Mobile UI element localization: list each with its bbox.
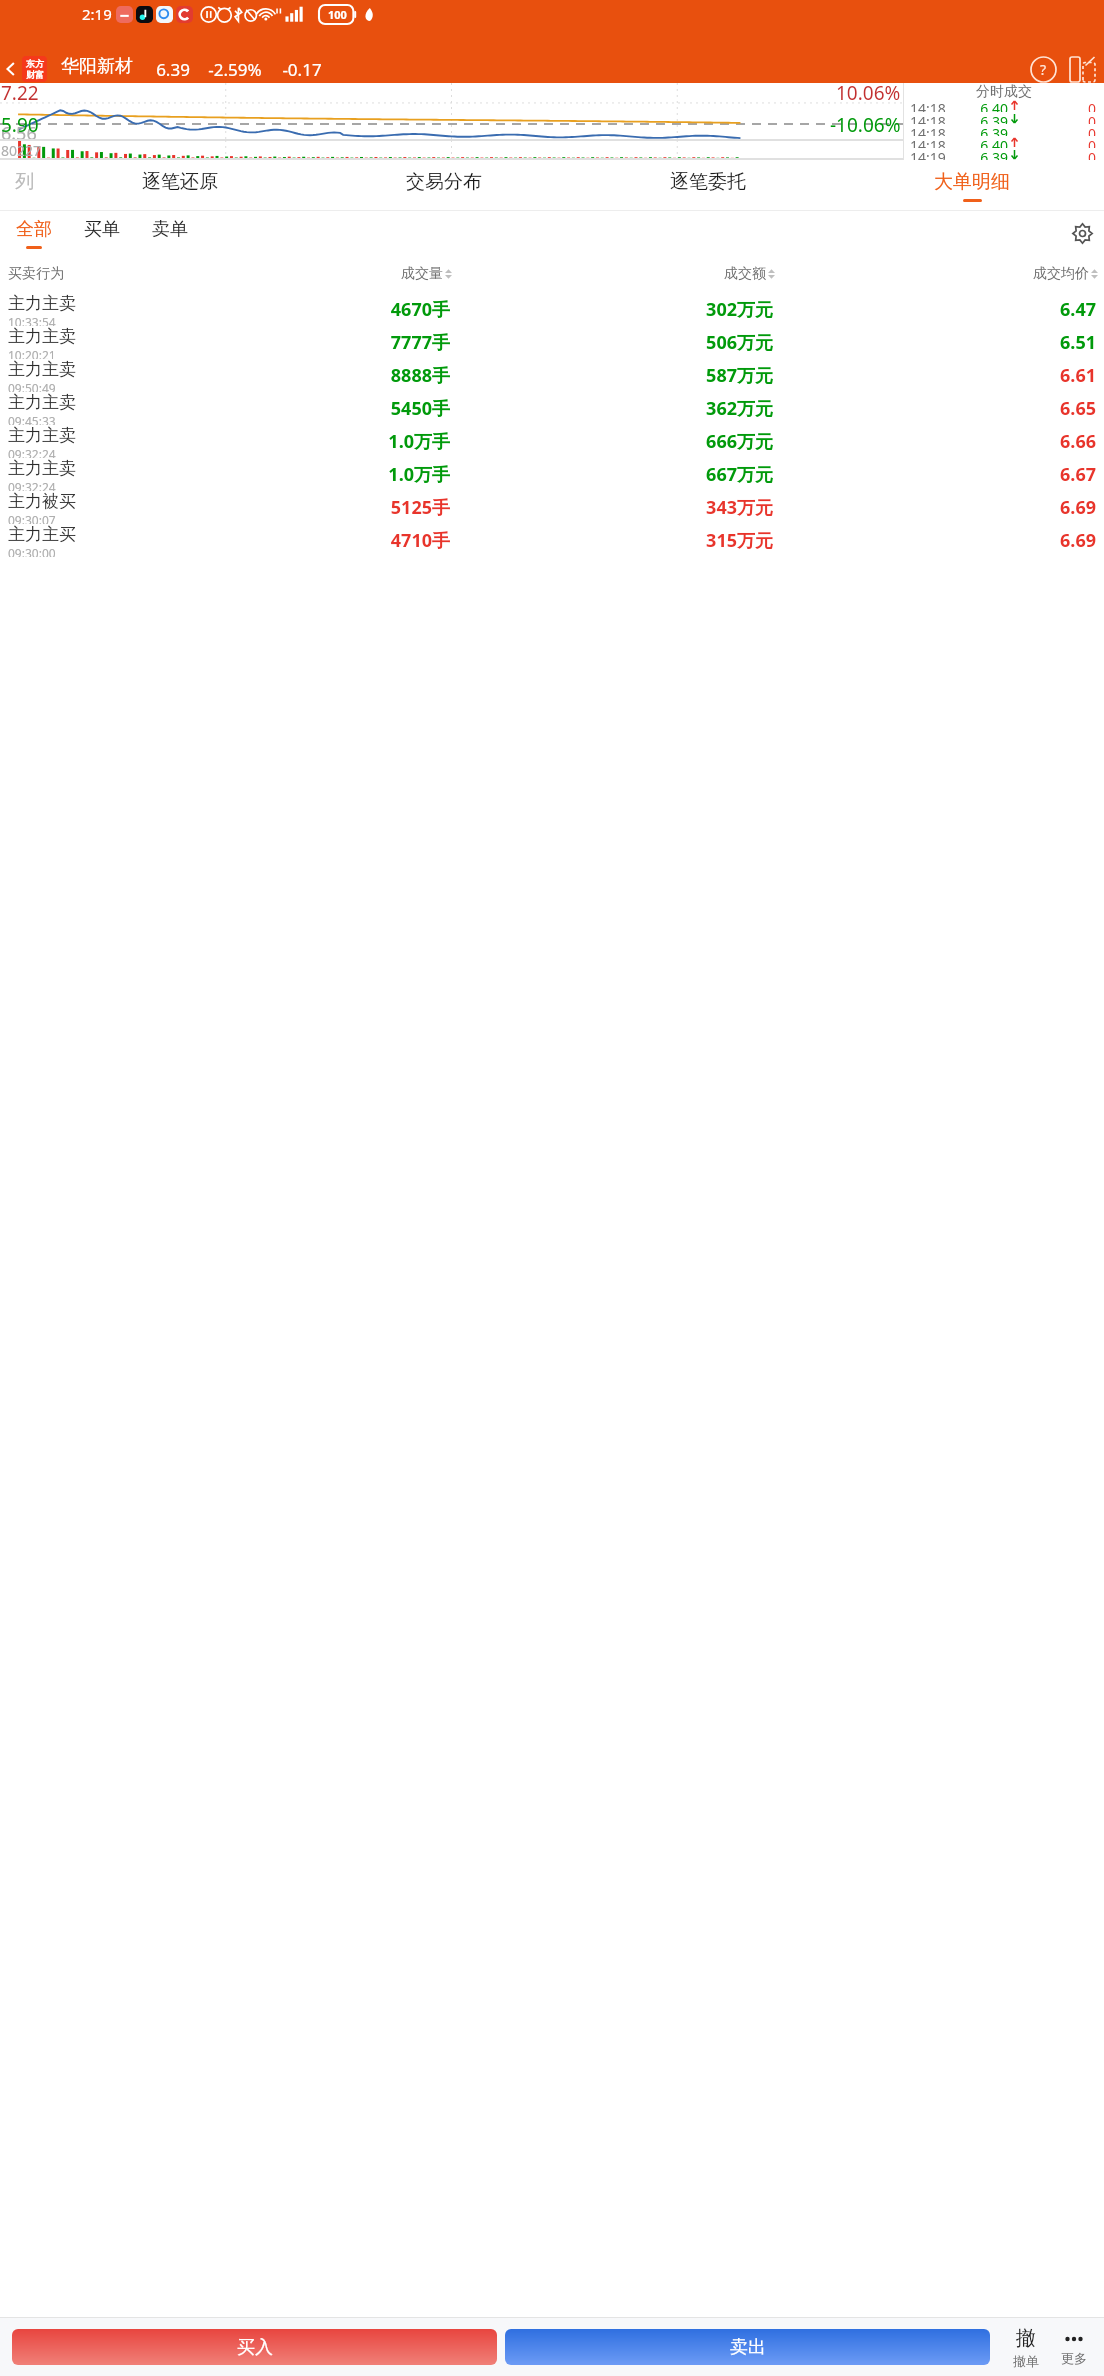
staticText: 买入 bbox=[237, 2336, 273, 2359]
button[interactable]: 14:18 bbox=[904, 99, 1104, 112]
button[interactable]: Settings bbox=[1060, 211, 1104, 255]
staticText: 14:18 bbox=[910, 99, 968, 112]
staticText: 80227 bbox=[1, 141, 42, 160]
staticText: 09:45:33 bbox=[8, 413, 56, 425]
button[interactable]: 主力主买 bbox=[0, 524, 1104, 557]
button[interactable]: 更多 bbox=[1050, 2318, 1098, 2376]
staticText: 列 bbox=[15, 170, 34, 194]
button[interactable]: 列 bbox=[0, 160, 48, 211]
button[interactable]: Split screen bbox=[1064, 55, 1100, 83]
staticText: 卖单 bbox=[152, 218, 188, 241]
button[interactable]: 逐笔还原 bbox=[48, 160, 312, 211]
staticText: 5450手 bbox=[128, 396, 450, 421]
button[interactable]: Back bbox=[0, 55, 22, 83]
staticText: 09:30:00 bbox=[8, 545, 56, 557]
staticText: 6.56 bbox=[1, 121, 37, 146]
staticText: 交易分布 bbox=[406, 170, 482, 194]
button[interactable]: 14:18 bbox=[904, 112, 1104, 124]
staticText: 14:18 bbox=[910, 136, 968, 148]
staticText: 1.0万手 bbox=[128, 429, 450, 454]
staticText: 5.90 bbox=[1, 112, 39, 132]
button[interactable]: 全部 bbox=[16, 218, 52, 249]
staticText: 302万元 bbox=[450, 297, 773, 322]
staticText: 买单 bbox=[84, 218, 120, 241]
button[interactable]: 成交量 bbox=[128, 265, 452, 283]
button[interactable]: 主力主卖 bbox=[0, 392, 1104, 425]
button[interactable]: 交易分布 bbox=[312, 160, 576, 211]
staticText: 主力主卖 bbox=[8, 458, 76, 479]
staticText: 7.22 bbox=[1, 80, 39, 106]
staticText: 财富 bbox=[26, 69, 44, 80]
button[interactable]: 14:18 bbox=[904, 136, 1104, 148]
button[interactable]: 成交均价 bbox=[775, 265, 1098, 283]
staticText: 主力主买 bbox=[8, 524, 76, 545]
button[interactable]: 主力被买 bbox=[0, 491, 1104, 524]
staticText: 09:30:07 bbox=[8, 512, 56, 524]
staticText: 4710手 bbox=[128, 528, 450, 553]
staticText: 14:18 bbox=[910, 124, 968, 136]
staticText: -2.59% bbox=[199, 58, 271, 81]
staticText: 主力主卖 bbox=[8, 293, 76, 314]
button[interactable]: 大单明细 bbox=[840, 160, 1104, 211]
staticText: 东方 bbox=[26, 58, 44, 69]
button[interactable]: 主力主卖 bbox=[0, 458, 1104, 491]
button[interactable]: 主力主卖 bbox=[0, 326, 1104, 359]
staticText: 主力被买 bbox=[8, 491, 76, 512]
staticText: 666万元 bbox=[450, 429, 773, 454]
staticText: 0 bbox=[1046, 136, 1096, 148]
staticText: 10:33:54 bbox=[8, 314, 56, 326]
staticText: 587万元 bbox=[450, 363, 773, 388]
staticText: 09:32:24 bbox=[8, 446, 56, 458]
button[interactable]: 成交额 bbox=[452, 265, 775, 283]
staticText: 6.40 bbox=[968, 99, 1008, 112]
button[interactable]: Help bbox=[1026, 55, 1060, 83]
button[interactable]: 主力主卖 bbox=[0, 359, 1104, 392]
staticText: 09:50:49 bbox=[8, 380, 56, 392]
staticText: 14:18 bbox=[910, 112, 968, 124]
staticText: 343万元 bbox=[450, 495, 773, 520]
staticText: 6.69 bbox=[773, 528, 1096, 553]
staticText: 5125手 bbox=[128, 495, 450, 520]
staticText: 主力主卖 bbox=[8, 359, 76, 380]
staticText: 逐笔还原 bbox=[142, 170, 218, 194]
staticText: 0 bbox=[1046, 148, 1096, 160]
button[interactable]: 买入 bbox=[12, 2329, 497, 2365]
staticText: 6.39 bbox=[147, 58, 199, 81]
staticText: 0 bbox=[1046, 124, 1096, 136]
staticText: 8888手 bbox=[128, 363, 450, 388]
staticText: 2:19 bbox=[82, 4, 112, 24]
staticText: 10.06% bbox=[836, 80, 901, 106]
staticText: 撤单 bbox=[1013, 2353, 1039, 2369]
button[interactable]: 逐笔委托 bbox=[576, 160, 840, 211]
staticText: 大单明细 bbox=[934, 170, 1010, 194]
staticText: 6.39 bbox=[968, 124, 1008, 136]
button[interactable]: 主力主卖 bbox=[0, 425, 1104, 458]
staticText: 6.39 bbox=[968, 112, 1008, 124]
staticText: 买卖行为 bbox=[8, 265, 128, 283]
staticText: 6.39 bbox=[968, 148, 1008, 160]
staticText: 逐笔委托 bbox=[670, 170, 746, 194]
button[interactable]: 14:18 bbox=[904, 124, 1104, 136]
button[interactable]: 卖出 bbox=[505, 2329, 990, 2365]
staticText: 华阳新材 bbox=[61, 55, 133, 78]
staticText: 506万元 bbox=[450, 330, 773, 355]
button[interactable]: 主力主卖 bbox=[0, 293, 1104, 326]
staticText: 09:32:24 bbox=[8, 479, 56, 491]
button[interactable]: 买单 bbox=[84, 218, 120, 249]
staticText: 6.47 bbox=[773, 297, 1096, 322]
staticText: 主力主卖 bbox=[8, 425, 76, 446]
staticText: 分时成交 bbox=[976, 83, 1032, 99]
staticText: 6.40 bbox=[968, 136, 1008, 148]
staticText: 1.0万手 bbox=[128, 462, 450, 487]
button[interactable]: 撤 bbox=[1002, 2318, 1050, 2376]
staticText: 主力主卖 bbox=[8, 392, 76, 413]
staticText: 362万元 bbox=[450, 396, 773, 421]
button[interactable]: 14:19 bbox=[904, 148, 1104, 160]
staticText: 卖出 bbox=[730, 2336, 766, 2359]
staticText: 撤 bbox=[1016, 2326, 1036, 2351]
staticText: 6.65 bbox=[773, 396, 1096, 421]
staticText: 成交额 bbox=[724, 265, 766, 283]
button[interactable]: 卖单 bbox=[152, 218, 188, 249]
button[interactable]: 东方 bbox=[22, 56, 47, 82]
